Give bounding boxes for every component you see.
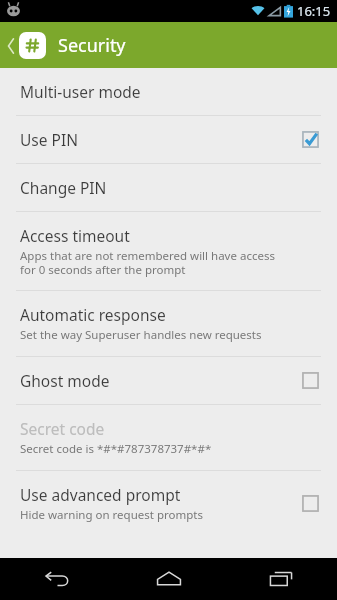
button[interactable]: Access timeout: [0, 212, 337, 290]
button[interactable]: Multi-user mode: [0, 68, 337, 115]
staticText: Access timeout: [20, 225, 130, 246]
button[interactable]: Change PIN: [0, 164, 337, 211]
button[interactable]: Navigate up: [0, 28, 48, 63]
staticText: Ghost mode: [20, 370, 110, 391]
staticText: Automatic response: [20, 304, 166, 325]
button[interactable]: Use PIN: [0, 116, 337, 163]
staticText: 16:15: [297, 2, 331, 20]
button[interactable]: Secret code: [0, 405, 337, 470]
staticText: Secret code: [20, 418, 105, 439]
staticText: Hide warning on request prompts: [20, 507, 203, 523]
staticText: Secret code is *#*#787378737#*#*: [20, 441, 212, 457]
button[interactable]: Home: [113, 558, 225, 600]
staticText: Use advanced prompt: [20, 484, 181, 505]
staticText: Set the way Superuser handles new reques…: [20, 327, 262, 343]
button[interactable]: Ghost mode: [0, 357, 337, 404]
staticText: Apps that are not remembered will have a…: [20, 248, 275, 277]
staticText: Multi-user mode: [20, 81, 141, 102]
staticText: Security: [58, 33, 126, 58]
staticText: Change PIN: [20, 177, 107, 198]
button[interactable]: Recent apps: [225, 558, 337, 600]
staticText: Use PIN: [20, 129, 78, 150]
button[interactable]: Back: [0, 558, 113, 600]
button[interactable]: Automatic response: [0, 291, 337, 356]
button[interactable]: Use advanced prompt: [0, 471, 337, 536]
